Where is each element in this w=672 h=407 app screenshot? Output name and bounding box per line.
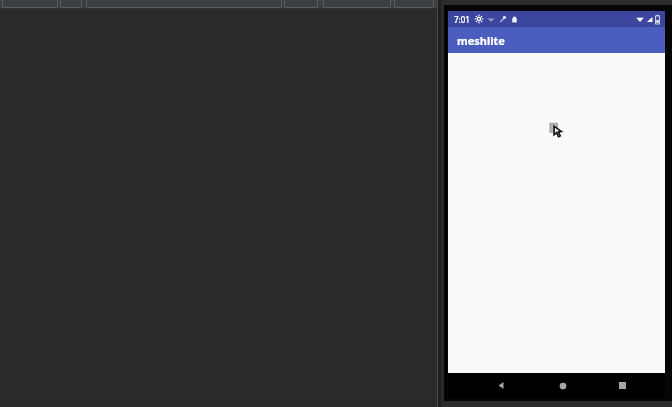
button[interactable]: Home (549, 373, 577, 398)
button[interactable] (60, 0, 82, 8)
button[interactable] (284, 0, 318, 8)
button[interactable] (86, 0, 282, 8)
staticText: 7:01 (454, 14, 470, 25)
button[interactable]: Back (487, 373, 515, 398)
button[interactable]: meshlite (448, 27, 665, 53)
button[interactable] (448, 53, 665, 373)
button[interactable] (2, 0, 58, 8)
button[interactable] (323, 0, 391, 8)
button[interactable]: Recent apps (608, 373, 636, 398)
staticText: meshlite (457, 33, 505, 48)
button[interactable] (394, 0, 434, 8)
